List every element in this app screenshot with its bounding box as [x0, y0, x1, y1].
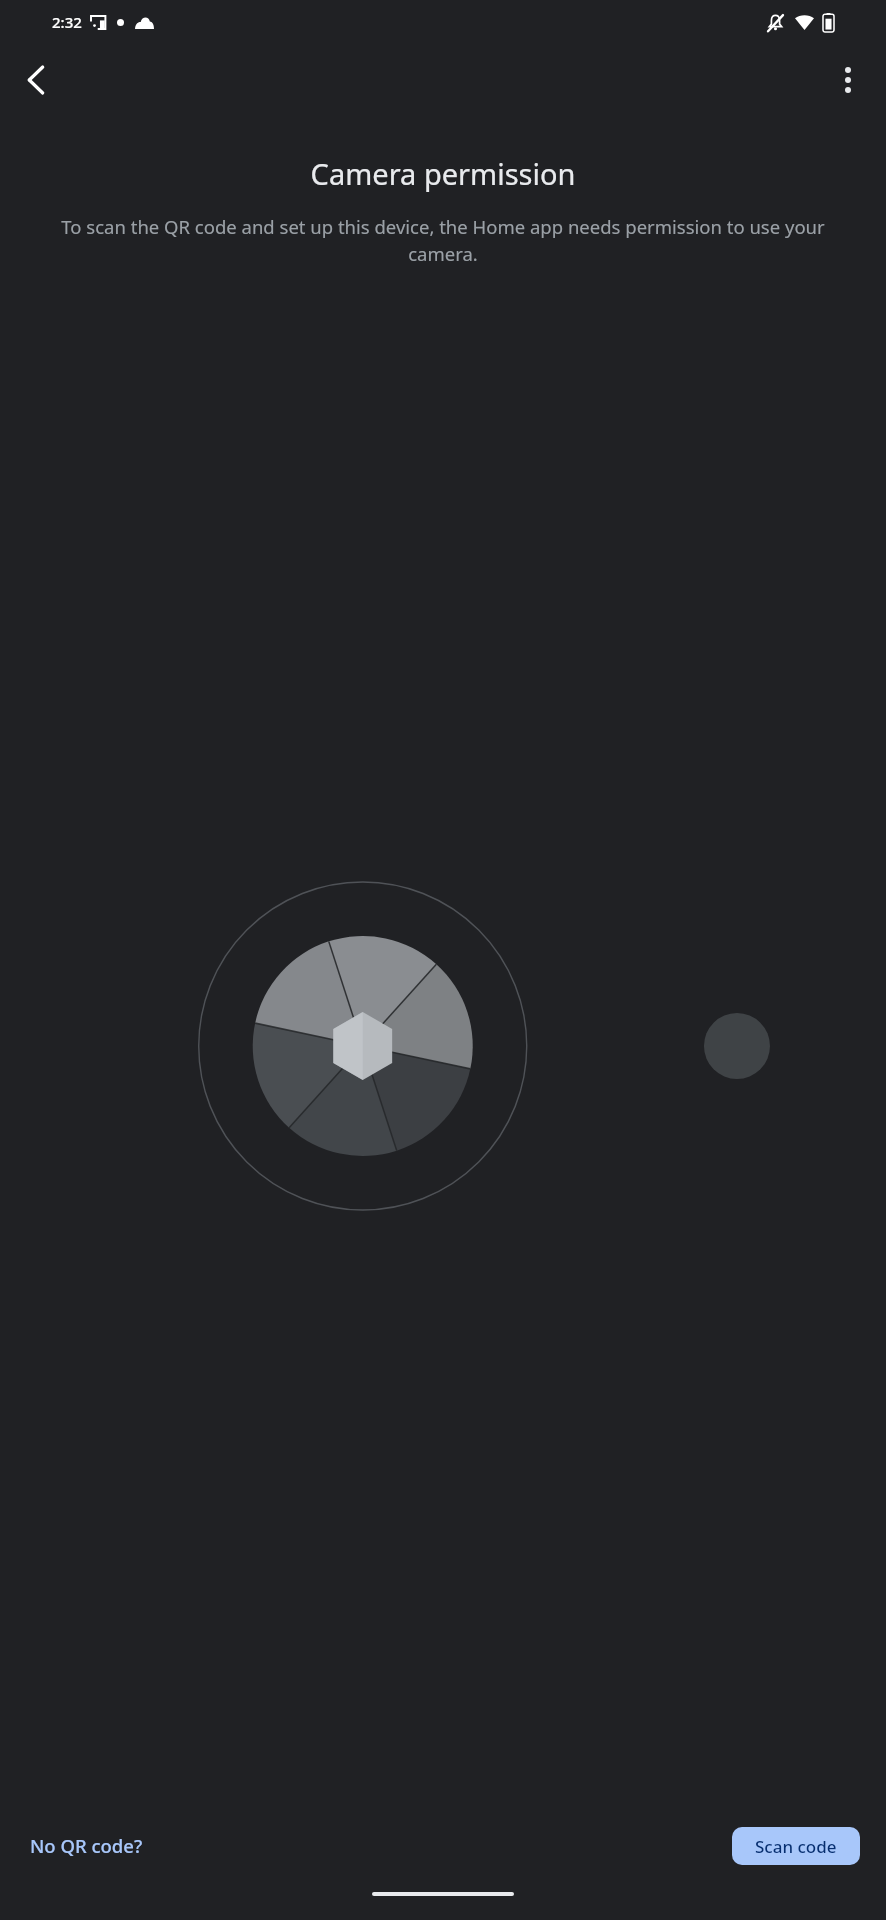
button[interactable]: Back: [8, 52, 64, 108]
staticText: To scan the QR code and set up this devi…: [26, 214, 860, 267]
button[interactable]: No QR code?: [28, 1825, 145, 1866]
staticText: No QR code?: [30, 1833, 143, 1858]
button[interactable]: More options: [820, 52, 876, 108]
button[interactable]: Scan code: [732, 1827, 860, 1865]
staticText: 2:32: [52, 12, 82, 32]
staticText: Camera permission: [24, 154, 862, 193]
staticText: Scan code: [755, 1835, 837, 1858]
